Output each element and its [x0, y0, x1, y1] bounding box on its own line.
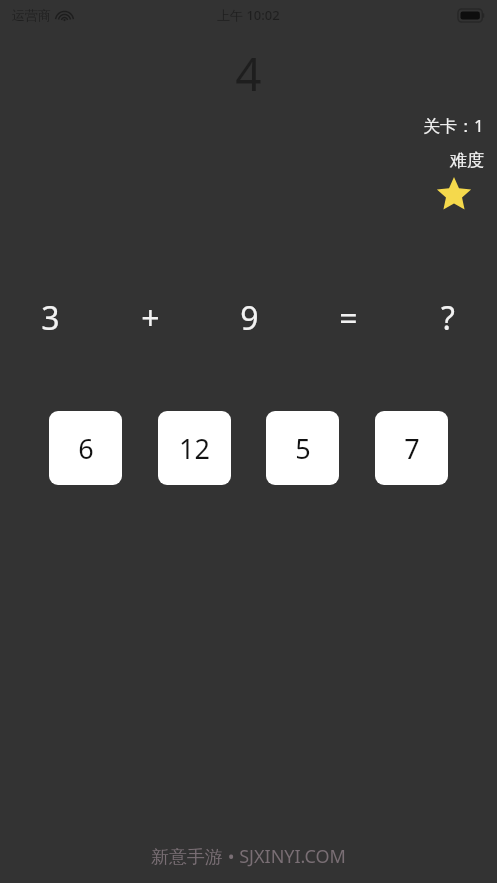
other: 难度一星 [436, 177, 472, 213]
staticText: + [141, 296, 160, 340]
staticText: 12 [179, 430, 210, 467]
staticText: 难度 [450, 150, 484, 171]
staticText: 上午 10:02 [217, 6, 280, 24]
staticText: 7 [404, 430, 420, 467]
staticText: 9 [240, 296, 259, 340]
staticText: 3 [41, 296, 60, 340]
staticText: = [339, 296, 358, 340]
button[interactable]: 12 [158, 411, 231, 485]
staticText: 5 [295, 430, 311, 467]
staticText: 新意手游 • SJXINYI.COM [151, 844, 346, 869]
staticText: 运营商 [12, 7, 51, 23]
button[interactable]: 7 [375, 411, 448, 485]
staticText: ? [441, 296, 455, 340]
staticText: 关卡：1 [423, 114, 484, 137]
button[interactable]: 6 [49, 411, 122, 485]
staticText: 6 [78, 430, 94, 467]
button[interactable]: 5 [266, 411, 339, 485]
staticText: 4 [235, 42, 262, 102]
